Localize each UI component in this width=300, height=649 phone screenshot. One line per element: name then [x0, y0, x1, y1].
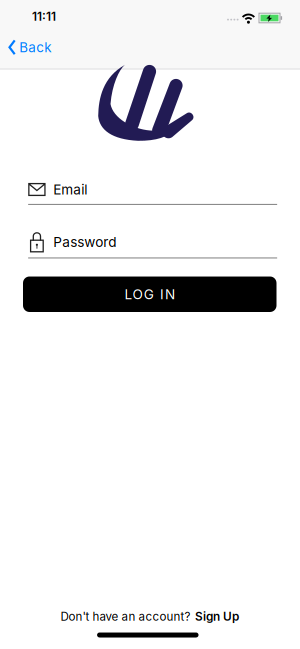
staticText: 11:11 — [32, 9, 56, 24]
button[interactable]: Back — [8, 39, 51, 55]
button[interactable]: Password — [28, 231, 277, 258]
staticText: Sign Up — [195, 609, 239, 624]
staticText: Email — [53, 181, 87, 198]
staticText: Back — [19, 39, 51, 55]
button[interactable]: LOG IN — [23, 276, 276, 312]
staticText: LOG IN — [124, 286, 175, 302]
button[interactable]: Sign Up — [195, 609, 239, 624]
staticText: Don't have an account? — [60, 609, 190, 623]
staticText: Password — [53, 234, 116, 250]
button[interactable]: Email — [28, 181, 277, 205]
